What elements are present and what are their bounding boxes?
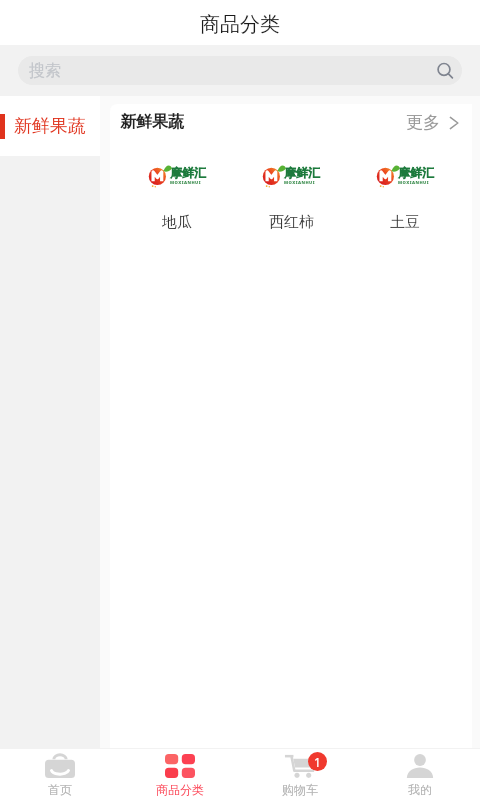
other: Search bbox=[436, 61, 456, 81]
staticText: 西红柿 bbox=[269, 213, 314, 232]
button[interactable]: 新鲜果蔬 bbox=[0, 96, 100, 156]
button[interactable]: 商品分类 bbox=[120, 749, 240, 800]
button[interactable]: 摩鲜汇 bbox=[348, 140, 462, 232]
staticText: 首页 bbox=[48, 782, 72, 797]
staticText: 更多 bbox=[406, 112, 440, 133]
staticText: 新鲜果蔬 bbox=[120, 112, 184, 132]
staticText: 1 bbox=[314, 754, 321, 770]
button[interactable]: 1 bbox=[240, 749, 360, 800]
staticText: 摩鲜汇 bbox=[398, 165, 434, 180]
staticText: 购物车 bbox=[282, 782, 318, 797]
staticText: 我的 bbox=[408, 782, 432, 797]
button[interactable]: 摩鲜汇 bbox=[234, 140, 348, 232]
button[interactable]: 我的 bbox=[360, 749, 480, 800]
staticText: MOXIANHUI bbox=[170, 180, 201, 186]
staticText: MOXIANHUI bbox=[398, 180, 429, 186]
staticText: 土豆 bbox=[390, 213, 420, 232]
staticText: 地瓜 bbox=[162, 213, 192, 232]
staticText: 搜索 bbox=[29, 61, 61, 81]
staticText: 摩鲜汇 bbox=[284, 165, 320, 180]
staticText: 商品分类 bbox=[200, 12, 280, 37]
staticText: 新鲜果蔬 bbox=[14, 115, 86, 138]
button[interactable]: 更多 bbox=[398, 108, 460, 137]
button[interactable]: 搜索 bbox=[18, 56, 462, 85]
button[interactable]: 摩鲜汇 bbox=[120, 140, 234, 232]
staticText: 商品分类 bbox=[156, 782, 204, 797]
staticText: MOXIANHUI bbox=[284, 180, 315, 186]
button[interactable]: 首页 bbox=[0, 749, 120, 800]
staticText: 摩鲜汇 bbox=[170, 165, 206, 180]
